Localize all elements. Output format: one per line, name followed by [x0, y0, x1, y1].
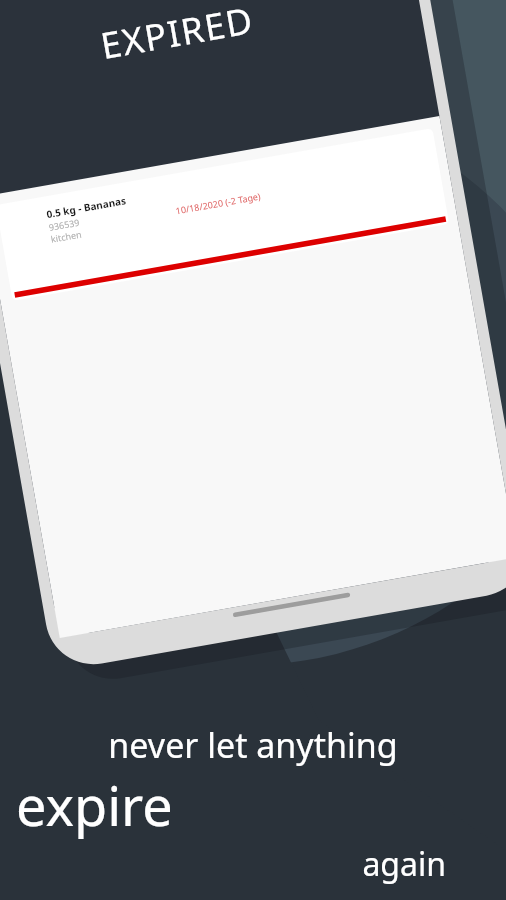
staticText: again: [0, 842, 446, 886]
staticText: EXPIRED: [97, 0, 258, 70]
staticText: kitchen: [50, 227, 82, 245]
staticText: 10/18/2020 (-2 Tage): [175, 190, 261, 216]
button[interactable]: 0.5 kg - Bananas: [45, 193, 132, 245]
staticText: 936539: [48, 216, 80, 233]
staticText: never let anything: [0, 722, 506, 768]
staticText: expire: [16, 768, 506, 842]
staticText: 0.5 kg - Bananas: [45, 193, 127, 221]
